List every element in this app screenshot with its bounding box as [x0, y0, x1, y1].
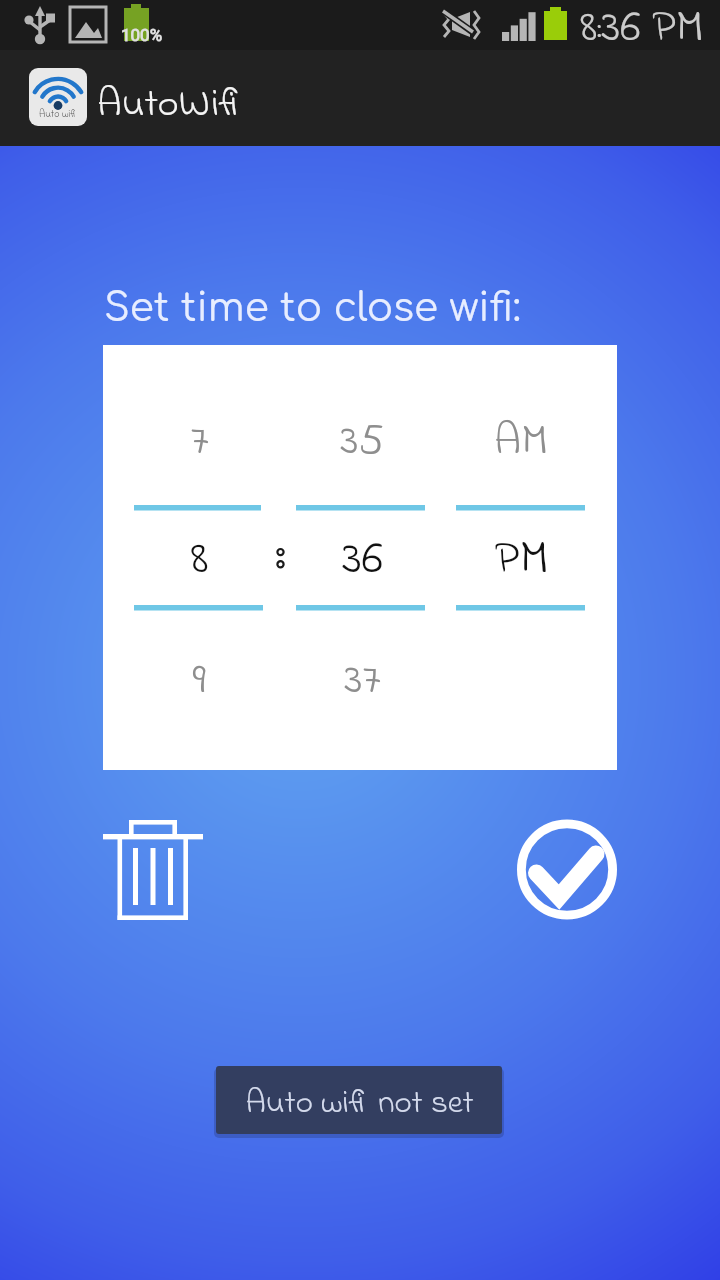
button[interactable]: 37: [314, 647, 410, 715]
staticText: 37: [344, 649, 381, 713]
staticText: 36: [342, 525, 383, 593]
staticText: Auto wifi not set: [245, 1080, 474, 1128]
button[interactable]: PM: [473, 525, 569, 593]
staticText: Set time to close wifi:: [104, 287, 521, 330]
staticText: AutoWifi: [97, 76, 245, 134]
button[interactable]: 7: [151, 408, 247, 476]
button[interactable]: 36: [314, 525, 410, 593]
staticText: 100%: [121, 25, 163, 45]
staticText: 8:36 PM: [580, 0, 704, 45]
button[interactable]: Confirm time: [515, 818, 620, 923]
staticText: AM: [494, 410, 548, 474]
staticText: 9: [192, 649, 206, 713]
button[interactable]: Auto wifi not set: [216, 1066, 502, 1134]
staticText: PM: [494, 525, 549, 593]
button[interactable]: 8: [151, 525, 247, 593]
button[interactable]: 9: [151, 647, 247, 715]
staticText: Auto wifi: [39, 107, 77, 122]
staticText: 8: [190, 525, 209, 593]
button[interactable]: 35: [314, 408, 410, 476]
button[interactable]: Delete schedule: [100, 815, 210, 925]
staticText: 35: [340, 410, 384, 474]
button[interactable]: AM: [473, 408, 569, 476]
staticText: 7: [190, 410, 209, 474]
